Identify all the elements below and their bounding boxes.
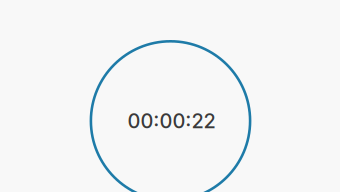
staticText: 00:00:22 (127, 109, 215, 133)
